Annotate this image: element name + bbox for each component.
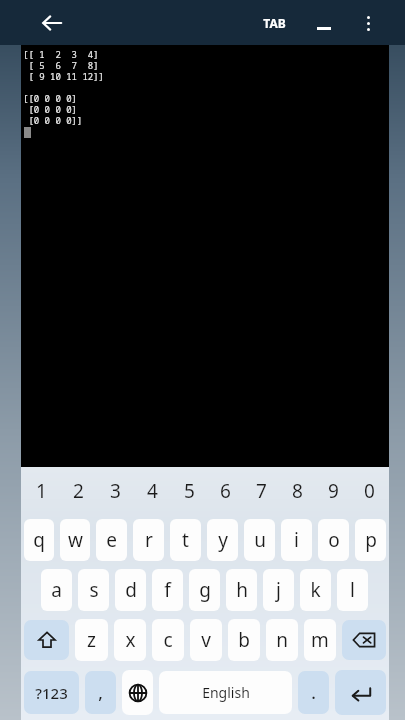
staticText: w (68, 527, 83, 553)
staticText: 0 (364, 478, 375, 504)
button[interactable]: Enter (335, 670, 386, 715)
button[interactable]: Back (34, 5, 70, 41)
button[interactable]: z (75, 619, 108, 661)
staticText: g (199, 577, 211, 603)
button[interactable]: o (318, 519, 349, 561)
staticText: q (33, 527, 45, 553)
button[interactable]: q (24, 519, 54, 561)
button[interactable]: e (96, 519, 127, 561)
button[interactable]: v (190, 619, 222, 661)
staticText: d (125, 577, 137, 603)
button[interactable]: a (41, 569, 72, 611)
button[interactable]: u (244, 519, 275, 561)
button[interactable]: Backspace (342, 620, 386, 660)
button[interactable]: . (298, 671, 329, 714)
staticText: s (89, 577, 99, 603)
button[interactable]: d (115, 569, 146, 611)
button[interactable]: s (78, 569, 109, 611)
staticText: b (238, 627, 250, 653)
button[interactable]: w (60, 519, 90, 561)
staticText: English (202, 683, 250, 702)
staticText: 9 (328, 478, 339, 504)
staticText: h (236, 577, 248, 603)
button[interactable]: TAB (252, 5, 296, 41)
staticText: 6 (220, 478, 231, 504)
staticText: f (164, 577, 171, 603)
button[interactable]: 0 (351, 467, 387, 515)
staticText: e (106, 527, 117, 553)
button[interactable]: 1 (23, 467, 60, 515)
button[interactable]: 9 (315, 467, 351, 515)
button[interactable]: 3 (97, 467, 134, 515)
button[interactable]: More options (350, 5, 386, 41)
button[interactable]: p (355, 519, 386, 561)
staticText: [ 9 10 11 12]] (23, 70, 105, 81)
button[interactable]: i (281, 519, 312, 561)
staticText: ?123 (35, 683, 68, 703)
staticText: 7 (256, 478, 267, 504)
staticText: n (276, 627, 288, 653)
staticText: . (311, 681, 316, 704)
staticText: [0 0 0 0] (23, 103, 78, 114)
staticText: [ 5 6 7 8] (23, 59, 99, 70)
button[interactable]: 5 (171, 467, 207, 515)
button[interactable]: m (304, 619, 336, 661)
button[interactable]: x (114, 619, 146, 661)
staticText: 2 (73, 478, 84, 504)
staticText: 8 (292, 478, 303, 504)
staticText: a (51, 577, 62, 603)
button[interactable]: h (226, 569, 257, 611)
staticText: [[ 1 2 3 4] (23, 48, 99, 59)
button[interactable]: ?123 (24, 671, 79, 714)
button[interactable]: Minimize (306, 5, 342, 41)
staticText: y (218, 527, 228, 553)
staticText: l (350, 577, 355, 603)
button[interactable]: b (228, 619, 260, 661)
button[interactable]: 4 (134, 467, 171, 515)
staticText: r (145, 527, 153, 553)
staticText: TAB (263, 15, 286, 31)
button[interactable]: 7 (243, 467, 279, 515)
staticText: o (328, 527, 340, 553)
staticText: p (365, 527, 377, 553)
button[interactable]: c (152, 619, 184, 661)
button[interactable]: Change language (122, 670, 153, 715)
button[interactable]: y (207, 519, 238, 561)
staticText: , (98, 681, 103, 704)
staticText: 1 (36, 478, 47, 504)
button[interactable]: 6 (207, 467, 243, 515)
button[interactable]: t (170, 519, 201, 561)
button[interactable]: k (300, 569, 331, 611)
button[interactable]: f (152, 569, 183, 611)
staticText: j (276, 577, 281, 603)
staticText: 4 (147, 478, 158, 504)
button[interactable]: English (159, 671, 292, 714)
staticText: z (87, 627, 96, 653)
staticText: i (294, 527, 299, 553)
button[interactable]: , (85, 671, 116, 714)
staticText: k (310, 577, 321, 603)
staticText: m (311, 627, 329, 653)
staticText: t (182, 527, 189, 553)
button[interactable]: l (337, 569, 368, 611)
button[interactable]: 8 (279, 467, 315, 515)
staticText: 3 (110, 478, 121, 504)
button[interactable]: n (266, 619, 298, 661)
staticText: u (254, 527, 266, 553)
button[interactable]: Shift (24, 620, 69, 660)
button[interactable]: 2 (60, 467, 97, 515)
staticText: x (125, 627, 136, 653)
button[interactable]: j (263, 569, 294, 611)
staticText: 5 (184, 478, 195, 504)
staticText: v (201, 627, 211, 653)
staticText: c (163, 627, 173, 653)
staticText: [0 0 0 0]] (23, 114, 83, 125)
button[interactable]: g (189, 569, 220, 611)
button[interactable]: r (133, 519, 164, 561)
staticText: [[0 0 0 0] (23, 92, 78, 103)
